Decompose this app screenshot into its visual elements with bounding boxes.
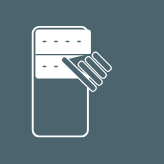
other: Tap gesture illustration — [0, 0, 164, 164]
